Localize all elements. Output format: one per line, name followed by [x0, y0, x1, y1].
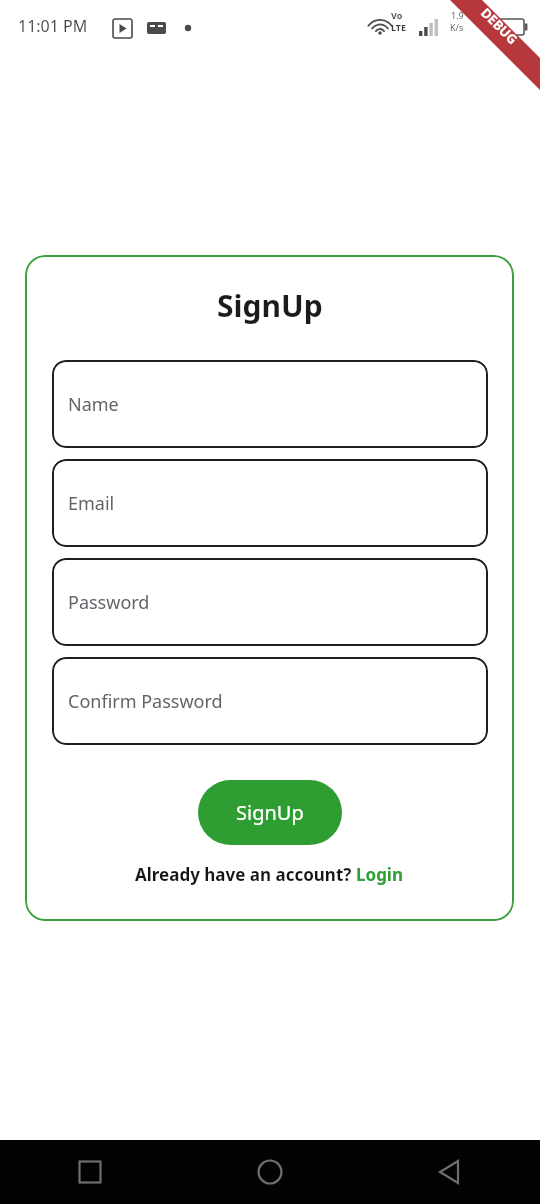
button[interactable]: SignUp [198, 780, 342, 845]
button[interactable]: Password [52, 558, 488, 646]
button[interactable]: Email [52, 459, 488, 547]
button[interactable]: Confirm Password [52, 657, 488, 745]
button[interactable]: Name [52, 360, 488, 448]
staticText: Vo [391, 9, 403, 21]
button[interactable]: Recent apps [0, 1140, 180, 1204]
staticText: Confirm Password [68, 689, 223, 714]
button[interactable]: Back [360, 1140, 540, 1204]
staticText: Email [68, 491, 115, 516]
staticText: K/s [450, 21, 464, 33]
staticText: 1.9 [451, 9, 464, 21]
staticText: Login [356, 863, 404, 886]
staticText: Already have an account? [135, 863, 352, 886]
staticText: LTE [391, 21, 407, 33]
staticText: 11:01 PM [18, 15, 88, 37]
staticText: Password [68, 590, 150, 615]
staticText: DEBUG [477, 4, 522, 48]
button[interactable]: Login [356, 863, 404, 886]
staticText: SignUp [217, 285, 323, 326]
button[interactable]: Home [180, 1140, 360, 1204]
staticText: Name [68, 392, 119, 417]
staticText: SignUp [236, 799, 304, 826]
